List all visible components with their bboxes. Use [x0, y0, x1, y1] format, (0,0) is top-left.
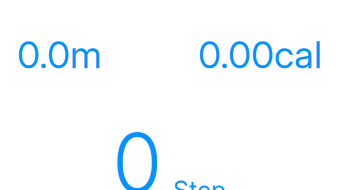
- staticText: 0.00cal: [198, 32, 322, 77]
- staticText: 0: [112, 113, 162, 190]
- staticText: Step: [173, 176, 226, 190]
- staticText: 0.0m: [17, 32, 102, 77]
